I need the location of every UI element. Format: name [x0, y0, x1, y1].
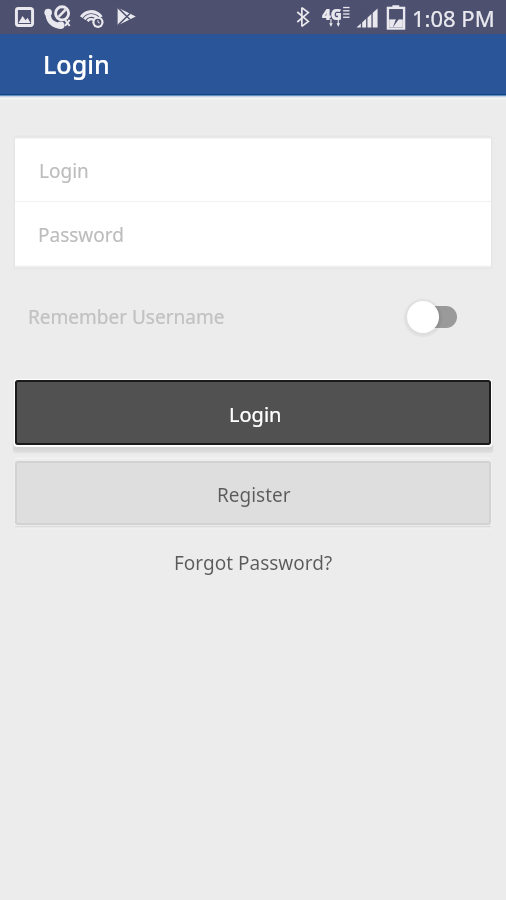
staticText: Remember Username	[28, 304, 225, 330]
button[interactable]: Password	[15, 202, 491, 265]
staticText: Forgot Password?	[174, 550, 333, 576]
staticText: Login	[229, 401, 282, 428]
button[interactable]: Forgot Password?	[166, 546, 341, 580]
staticText: Login	[39, 158, 89, 184]
staticText: Password	[38, 222, 124, 248]
button[interactable]: Register	[15, 461, 491, 525]
staticText: 4G	[322, 4, 342, 24]
staticText: Register	[217, 482, 291, 508]
button[interactable]: Remember Username	[0, 296, 506, 338]
staticText: Login	[43, 47, 110, 81]
staticText: 1:08 PM	[412, 3, 495, 33]
button[interactable]: Login	[15, 139, 491, 201]
button[interactable]: Login	[15, 380, 491, 445]
